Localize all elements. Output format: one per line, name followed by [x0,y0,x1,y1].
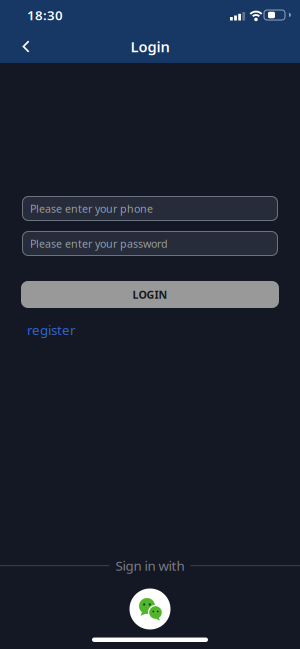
button[interactable]: Sign in with WeChat [129,588,170,629]
staticText: register [27,321,76,339]
button[interactable]: Back [0,33,29,60]
button[interactable]: Please enter your password [22,231,278,256]
staticText: 18:30 [27,6,63,24]
staticText: LOGIN [132,287,167,302]
staticText: Login [130,37,169,56]
button[interactable]: register [27,321,76,339]
staticText: Please enter your password [30,236,168,251]
staticText: Please enter your phone [30,201,153,216]
staticText: Sign in with [115,557,184,574]
button[interactable]: LOGIN [21,281,279,308]
button[interactable]: Please enter your phone [22,196,278,221]
